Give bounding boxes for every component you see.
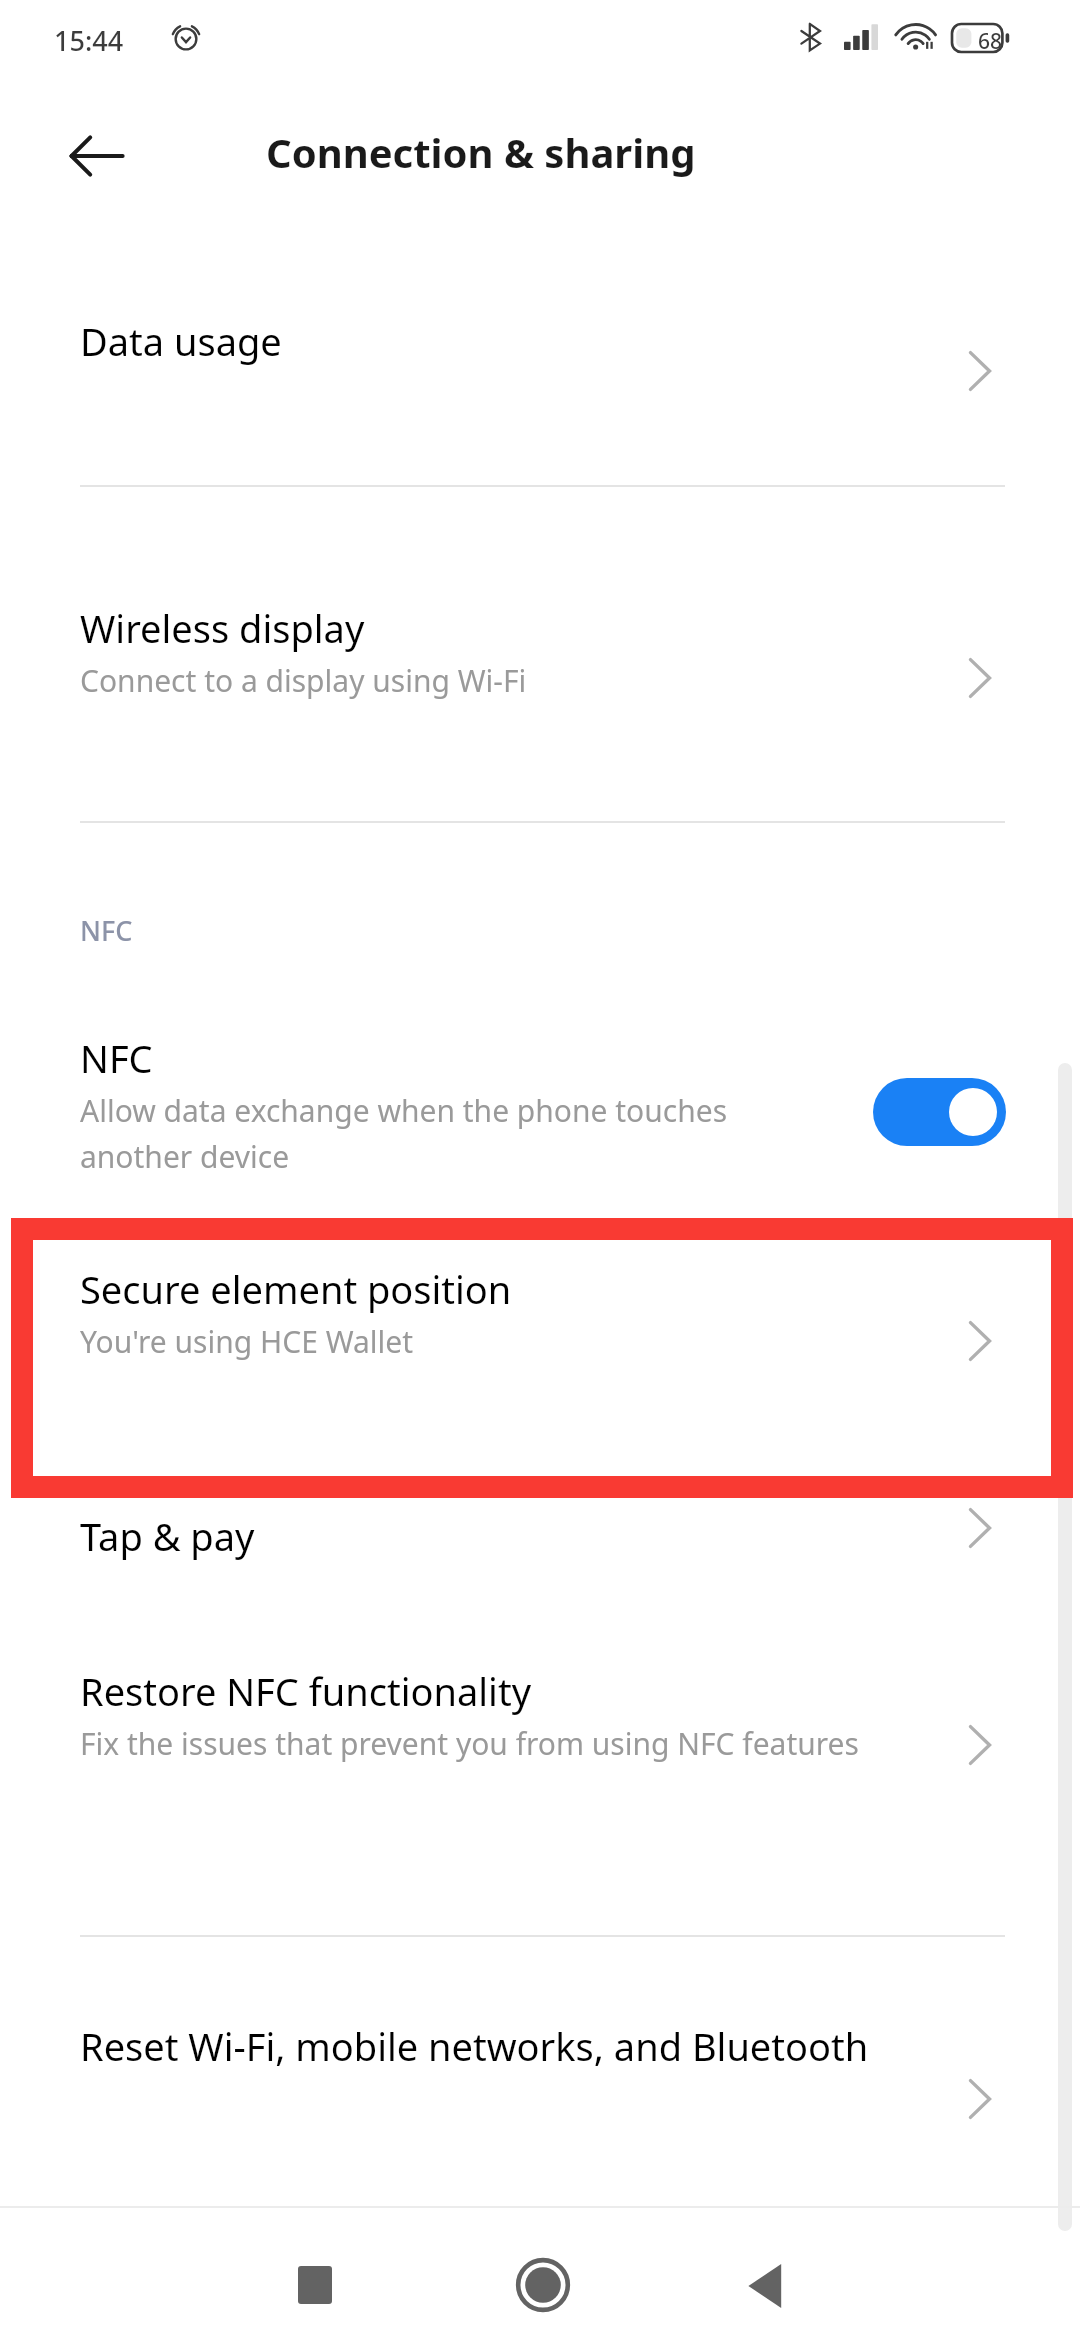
staticText: Reset Wi-Fi, mobile networks, and Blueto… bbox=[80, 2020, 869, 2072]
staticText: Restore NFC functionality bbox=[80, 1665, 532, 1717]
staticText: Secure element position bbox=[80, 1263, 512, 1315]
button[interactable]: Secure element position bbox=[0, 1253, 1080, 1468]
staticText: Fix the issues that prevent you from usi… bbox=[80, 1723, 859, 1764]
staticText: Connection & sharing bbox=[266, 125, 696, 179]
button[interactable]: NFC bbox=[0, 1010, 1080, 1215]
staticText: Tap & pay bbox=[80, 1510, 255, 1562]
staticText: Data usage bbox=[80, 315, 282, 367]
button[interactable]: Data usage bbox=[0, 305, 1080, 465]
button[interactable]: NFC toggle, on bbox=[873, 1078, 1006, 1146]
staticText: 68 bbox=[967, 27, 1013, 56]
button[interactable]: Tap & pay bbox=[0, 1500, 1080, 1660]
button[interactable]: Recent apps bbox=[285, 2255, 345, 2315]
button[interactable]: Wireless display bbox=[0, 592, 1080, 792]
staticText: Allow data exchange when the phone touch… bbox=[80, 1090, 820, 1177]
button[interactable]: Restore NFC functionality bbox=[0, 1655, 1080, 1885]
staticText: NFC bbox=[80, 912, 133, 949]
staticText: You're using HCE Wallet bbox=[80, 1321, 413, 1362]
staticText: Wireless display bbox=[80, 602, 365, 654]
staticText: NFC bbox=[80, 1032, 153, 1084]
button[interactable]: Back bbox=[735, 2255, 797, 2317]
button[interactable]: Reset Wi-Fi, mobile networks, and Blueto… bbox=[0, 1990, 1080, 2220]
staticText: 15:44 bbox=[54, 22, 124, 59]
button[interactable]: Home bbox=[510, 2252, 576, 2318]
button[interactable]: Back bbox=[60, 120, 132, 192]
staticText: Connect to a display using Wi-Fi bbox=[80, 660, 527, 701]
